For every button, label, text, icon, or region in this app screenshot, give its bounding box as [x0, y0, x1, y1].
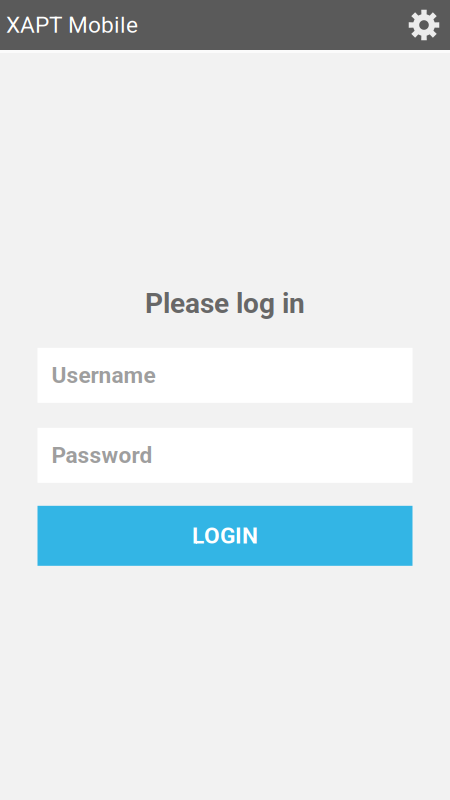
- staticText: Password: [51, 442, 152, 469]
- button[interactable]: LOGIN: [37, 506, 412, 566]
- staticText: Please log in: [145, 287, 305, 320]
- staticText: LOGIN: [192, 522, 258, 549]
- staticText: XAPT Mobile: [6, 12, 138, 38]
- button[interactable]: Settings: [398, 0, 450, 50]
- button[interactable]: Password: [37, 428, 412, 483]
- staticText: Username: [51, 362, 155, 389]
- button[interactable]: Username: [37, 348, 412, 403]
